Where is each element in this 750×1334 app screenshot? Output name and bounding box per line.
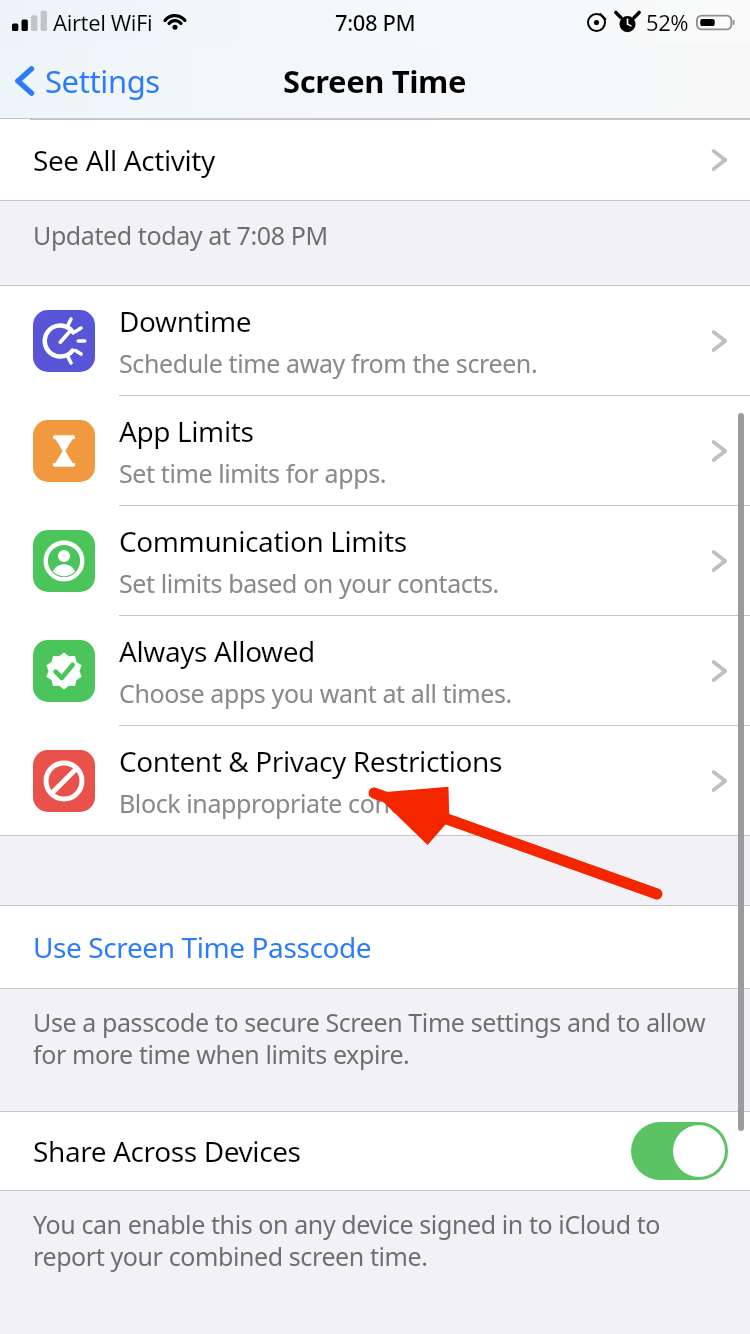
button[interactable]: Share Across Devices bbox=[0, 1112, 750, 1190]
button[interactable]: Use Screen Time Passcode bbox=[0, 906, 750, 988]
staticText: Updated today at 7:08 PM bbox=[33, 218, 328, 252]
staticText: Use Screen Time Passcode bbox=[33, 928, 372, 966]
button[interactable]: App Limits bbox=[0, 396, 750, 505]
staticText: 52% bbox=[646, 7, 689, 37]
staticText: Choose apps you want at all times. bbox=[119, 676, 512, 710]
staticText: Settings bbox=[45, 60, 160, 102]
staticText: Always Allowed bbox=[119, 632, 315, 670]
button[interactable]: Share Across Devices, on bbox=[631, 1122, 728, 1180]
staticText: Set time limits for apps. bbox=[119, 456, 387, 490]
staticText: App Limits bbox=[119, 412, 254, 450]
staticText: Set limits based on your contacts. bbox=[119, 566, 499, 600]
staticText: Share Across Devices bbox=[33, 1132, 301, 1170]
staticText: Block inappropriate content. bbox=[119, 786, 442, 820]
staticText: Screen Time bbox=[283, 60, 467, 102]
button[interactable]: Downtime bbox=[0, 286, 750, 395]
staticText: See All Activity bbox=[33, 141, 215, 179]
button[interactable]: Settings bbox=[0, 50, 176, 112]
staticText: Airtel WiFi bbox=[53, 7, 153, 37]
staticText: You can enable this on any device signed… bbox=[33, 1207, 710, 1273]
staticText: Use a passcode to secure Screen Time set… bbox=[33, 1005, 716, 1071]
staticText: 7:08 PM bbox=[335, 7, 416, 37]
button[interactable]: Content & Privacy Restrictions bbox=[0, 726, 750, 835]
staticText: Communication Limits bbox=[119, 522, 407, 560]
staticText: Schedule time away from the screen. bbox=[119, 346, 538, 380]
button[interactable]: Communication Limits bbox=[0, 506, 750, 615]
button[interactable]: Always Allowed bbox=[0, 616, 750, 725]
staticText: Downtime bbox=[119, 302, 252, 340]
button[interactable]: See All Activity bbox=[0, 119, 750, 200]
staticText: Content & Privacy Restrictions bbox=[119, 742, 502, 780]
